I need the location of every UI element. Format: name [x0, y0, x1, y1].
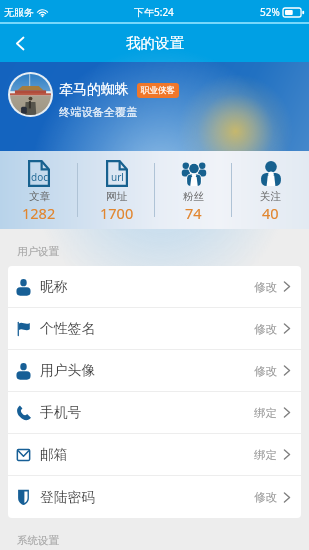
staticText: 终端设备全覆盖	[59, 105, 138, 119]
staticText: 修改	[254, 364, 277, 378]
staticText: 手机号	[40, 404, 82, 421]
button[interactable]: url	[78, 151, 155, 229]
staticText: 用户头像	[40, 362, 96, 379]
button[interactable]: 粉丝	[155, 151, 232, 229]
staticText: 个性签名	[40, 320, 96, 337]
staticText: 昵称	[40, 278, 68, 295]
staticText: 邮箱	[40, 446, 68, 463]
staticText: 1700	[100, 203, 134, 223]
staticText: 绑定	[254, 448, 277, 462]
staticText: 文章	[29, 190, 50, 203]
staticText: doc	[31, 170, 48, 184]
button[interactable]: 登陆密码	[8, 476, 301, 518]
button[interactable]: 个性签名	[8, 308, 301, 349]
button[interactable]: 昵称	[8, 266, 301, 307]
staticText: 40	[262, 203, 279, 223]
staticText: 牵马的蜘蛛	[59, 81, 129, 99]
staticText: 修改	[254, 322, 277, 336]
staticText: 下午5:24	[134, 5, 174, 19]
staticText: 登陆密码	[40, 489, 96, 506]
button[interactable]: doc	[0, 151, 78, 229]
staticText: 52%	[260, 5, 280, 19]
button[interactable]: 用户头像	[8, 350, 301, 391]
button[interactable]: Back	[0, 24, 40, 62]
staticText: 我的设置	[126, 34, 184, 52]
staticText: 用户设置	[17, 245, 59, 258]
staticText: 无服务	[4, 6, 34, 19]
staticText: 系统设置	[17, 534, 59, 547]
staticText: 粉丝	[183, 190, 204, 203]
button[interactable]: 邮箱	[8, 434, 301, 475]
staticText: 绑定	[254, 406, 277, 420]
staticText: 关注	[260, 190, 281, 203]
staticText: 网址	[106, 190, 127, 203]
button[interactable]: 关注	[232, 151, 309, 229]
staticText: 74	[185, 203, 202, 223]
button[interactable]: 手机号	[8, 392, 301, 433]
staticText: 修改	[254, 280, 277, 294]
staticText: 1282	[22, 203, 56, 223]
button[interactable]: Avatar	[8, 72, 53, 117]
staticText: url	[111, 170, 124, 184]
staticText: 修改	[254, 490, 277, 504]
staticText: 职业侠客	[141, 85, 175, 96]
